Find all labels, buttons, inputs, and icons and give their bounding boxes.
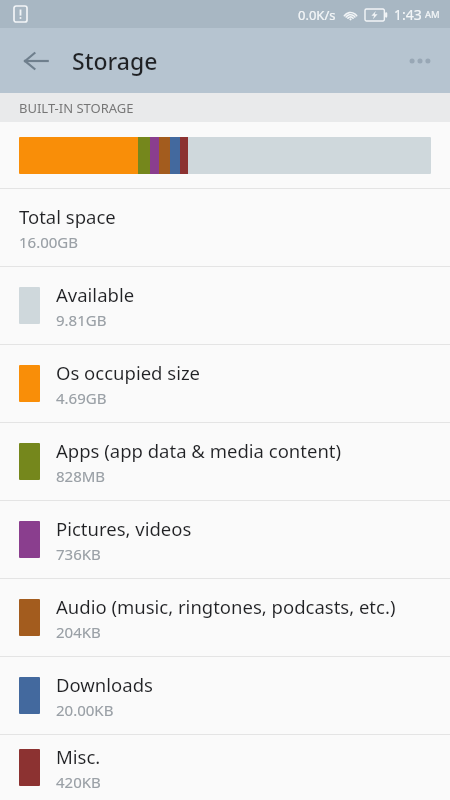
staticText: 420KB [56, 772, 101, 792]
staticText: 1:43 [394, 5, 422, 24]
staticText: 0.0K/s [298, 6, 336, 24]
staticText: 9.81GB [56, 310, 107, 330]
staticText: Pictures, videos [56, 516, 192, 541]
button[interactable]: Audio (music, ringtones, podcasts, etc.) [0, 579, 450, 656]
button[interactable]: Misc. [0, 735, 450, 800]
button[interactable]: Downloads [0, 657, 450, 734]
button[interactable]: Back [14, 39, 58, 83]
button[interactable]: More options [398, 39, 442, 83]
staticText: BUILT-IN STORAGE [19, 99, 134, 117]
staticText: Apps (app data & media content) [56, 438, 342, 463]
staticText: Total space [19, 204, 116, 229]
button[interactable]: Available [0, 267, 450, 344]
staticText: Misc. [56, 744, 101, 769]
button[interactable]: Pictures, videos [0, 501, 450, 578]
button[interactable]: Total space [0, 189, 450, 266]
staticText: Audio (music, ringtones, podcasts, etc.) [56, 594, 396, 619]
staticText: Downloads [56, 672, 153, 697]
staticText: 16.00GB [19, 232, 79, 252]
staticText: 828MB [56, 466, 106, 486]
button[interactable]: Apps (app data & media content) [0, 423, 450, 500]
staticText: 736KB [56, 544, 101, 564]
staticText: 20.00KB [56, 700, 114, 720]
staticText: 204KB [56, 622, 101, 642]
staticText: Os occupied size [56, 360, 201, 385]
staticText: Storage [72, 45, 158, 76]
staticText: 4.69GB [56, 388, 107, 408]
staticText: AM [425, 8, 440, 21]
staticText: Available [56, 282, 135, 307]
button[interactable]: Os occupied size [0, 345, 450, 422]
